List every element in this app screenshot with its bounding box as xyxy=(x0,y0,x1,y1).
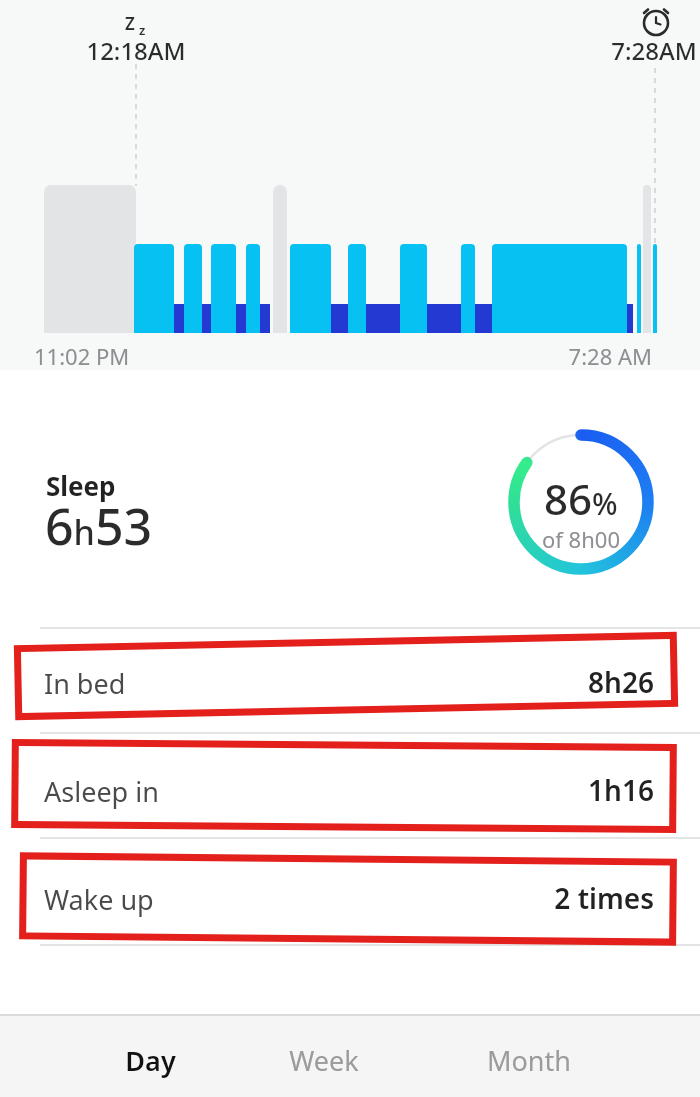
staticText: 7:28 AM xyxy=(568,341,652,371)
staticText: Sleep xyxy=(46,468,116,503)
staticText: z xyxy=(139,21,146,39)
staticText: 1h16 xyxy=(588,771,654,809)
staticText: 2 times xyxy=(554,879,654,917)
staticText: Asleep in xyxy=(44,773,159,810)
staticText: 7:28AM xyxy=(611,34,697,67)
staticText: 6h53 xyxy=(45,492,153,560)
staticText: 8h26 xyxy=(588,663,654,701)
staticText: 11:02 PM xyxy=(34,341,130,371)
staticText: Day xyxy=(125,1042,176,1079)
staticText: Wake up xyxy=(44,881,154,918)
staticText: Week xyxy=(289,1042,359,1079)
staticText: 86% xyxy=(544,470,618,520)
staticText: of 8h00 xyxy=(542,524,620,554)
staticText: Month xyxy=(487,1042,571,1079)
staticText: Z xyxy=(125,12,135,35)
staticText: 12:18AM xyxy=(86,34,186,67)
staticText: In bed xyxy=(44,665,126,702)
